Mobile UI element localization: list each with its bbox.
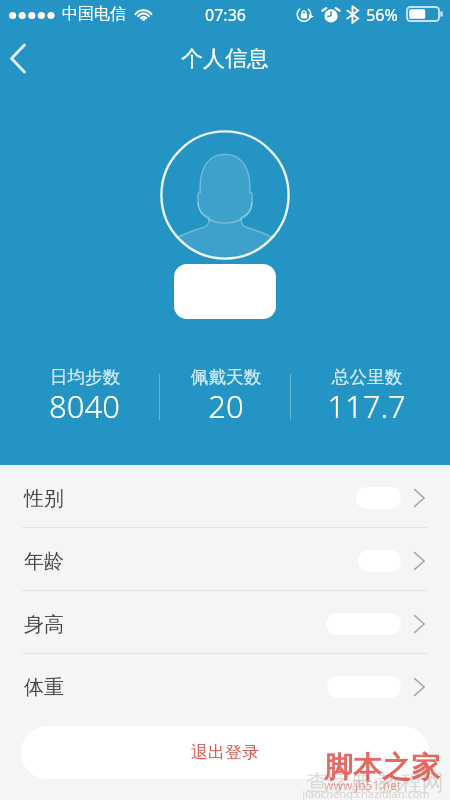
button[interactable]: 体重	[0, 654, 450, 716]
staticText: 退出登录	[191, 742, 259, 763]
staticText: 中国电信	[62, 4, 126, 24]
staticText: 总公里数	[332, 366, 402, 388]
staticText: 日均步数	[50, 366, 120, 388]
button[interactable]: 退出登录	[21, 726, 429, 779]
staticText: 身高	[24, 612, 64, 637]
staticText: 年龄	[24, 549, 64, 574]
staticText: 佩戴天数	[191, 366, 261, 388]
staticText: 个人信息	[181, 45, 269, 73]
staticText: 56%	[366, 4, 398, 26]
staticText: www.jb51.net	[324, 777, 401, 793]
button[interactable]: 性别	[0, 465, 450, 527]
staticText: 20	[208, 385, 244, 427]
staticText: 性别	[24, 486, 64, 511]
staticText: jiaocheng.chazidian.com	[302, 786, 430, 800]
staticText: 8040	[49, 385, 120, 427]
staticText: 07:36	[202, 4, 249, 26]
staticText: 117.7	[327, 385, 406, 427]
button[interactable]: 年龄	[0, 528, 450, 590]
staticText: 脚本之家	[324, 749, 440, 786]
button[interactable]: 身高	[0, 591, 450, 653]
staticText: 体重	[24, 675, 64, 700]
button[interactable]: Back	[0, 34, 44, 78]
staticText: 查字典 教程网	[306, 766, 444, 796]
